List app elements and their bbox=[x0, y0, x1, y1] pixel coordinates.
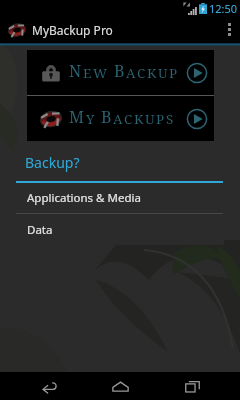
staticText: A bbox=[113, 110, 123, 128]
staticText: Applications & Media bbox=[27, 190, 141, 206]
staticText: E bbox=[83, 64, 92, 82]
button[interactable]: Applications & Media bbox=[15, 183, 224, 213]
staticText: C bbox=[137, 64, 146, 82]
staticText: W bbox=[93, 64, 108, 82]
staticText: C bbox=[124, 110, 133, 128]
button[interactable]: Back bbox=[24, 372, 72, 400]
staticText: K bbox=[134, 110, 144, 128]
button[interactable]: M bbox=[27, 96, 214, 141]
button[interactable]: Recent apps bbox=[168, 372, 216, 400]
staticText: MyBackup Pro bbox=[32, 22, 113, 38]
button[interactable]: Home bbox=[96, 372, 144, 400]
button[interactable]: N bbox=[27, 50, 214, 95]
staticText: 12:50 bbox=[209, 1, 238, 16]
button[interactable]: Data bbox=[15, 214, 224, 245]
staticText: U bbox=[145, 110, 155, 128]
button[interactable]: MyBackup Pro bbox=[0, 16, 240, 43]
staticText: B bbox=[101, 106, 112, 128]
staticText: Backup? bbox=[25, 153, 80, 172]
staticText: S bbox=[166, 110, 174, 128]
staticText: A bbox=[126, 64, 136, 82]
staticText: P bbox=[169, 64, 178, 82]
staticText: K bbox=[147, 64, 157, 82]
staticText: U bbox=[158, 64, 168, 82]
button[interactable]: More options bbox=[218, 16, 240, 43]
staticText: P bbox=[156, 110, 165, 128]
staticText: N bbox=[69, 60, 82, 82]
staticText: M bbox=[69, 106, 85, 128]
staticText: Y bbox=[86, 110, 95, 128]
staticText: Data bbox=[27, 222, 53, 238]
staticText: B bbox=[114, 60, 125, 82]
